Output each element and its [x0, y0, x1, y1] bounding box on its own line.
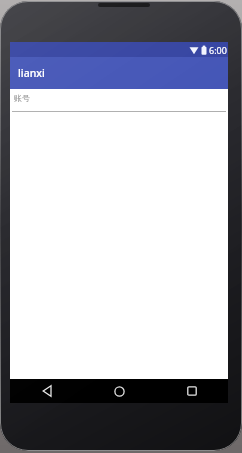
- button[interactable]: 账号: [10, 89, 228, 112]
- button[interactable]: [35, 379, 59, 403]
- staticText: 6:00: [209, 44, 227, 56]
- button[interactable]: [180, 379, 204, 403]
- staticText: 账号: [14, 93, 30, 103]
- button[interactable]: [107, 379, 131, 403]
- staticText: lianxi: [18, 66, 45, 80]
